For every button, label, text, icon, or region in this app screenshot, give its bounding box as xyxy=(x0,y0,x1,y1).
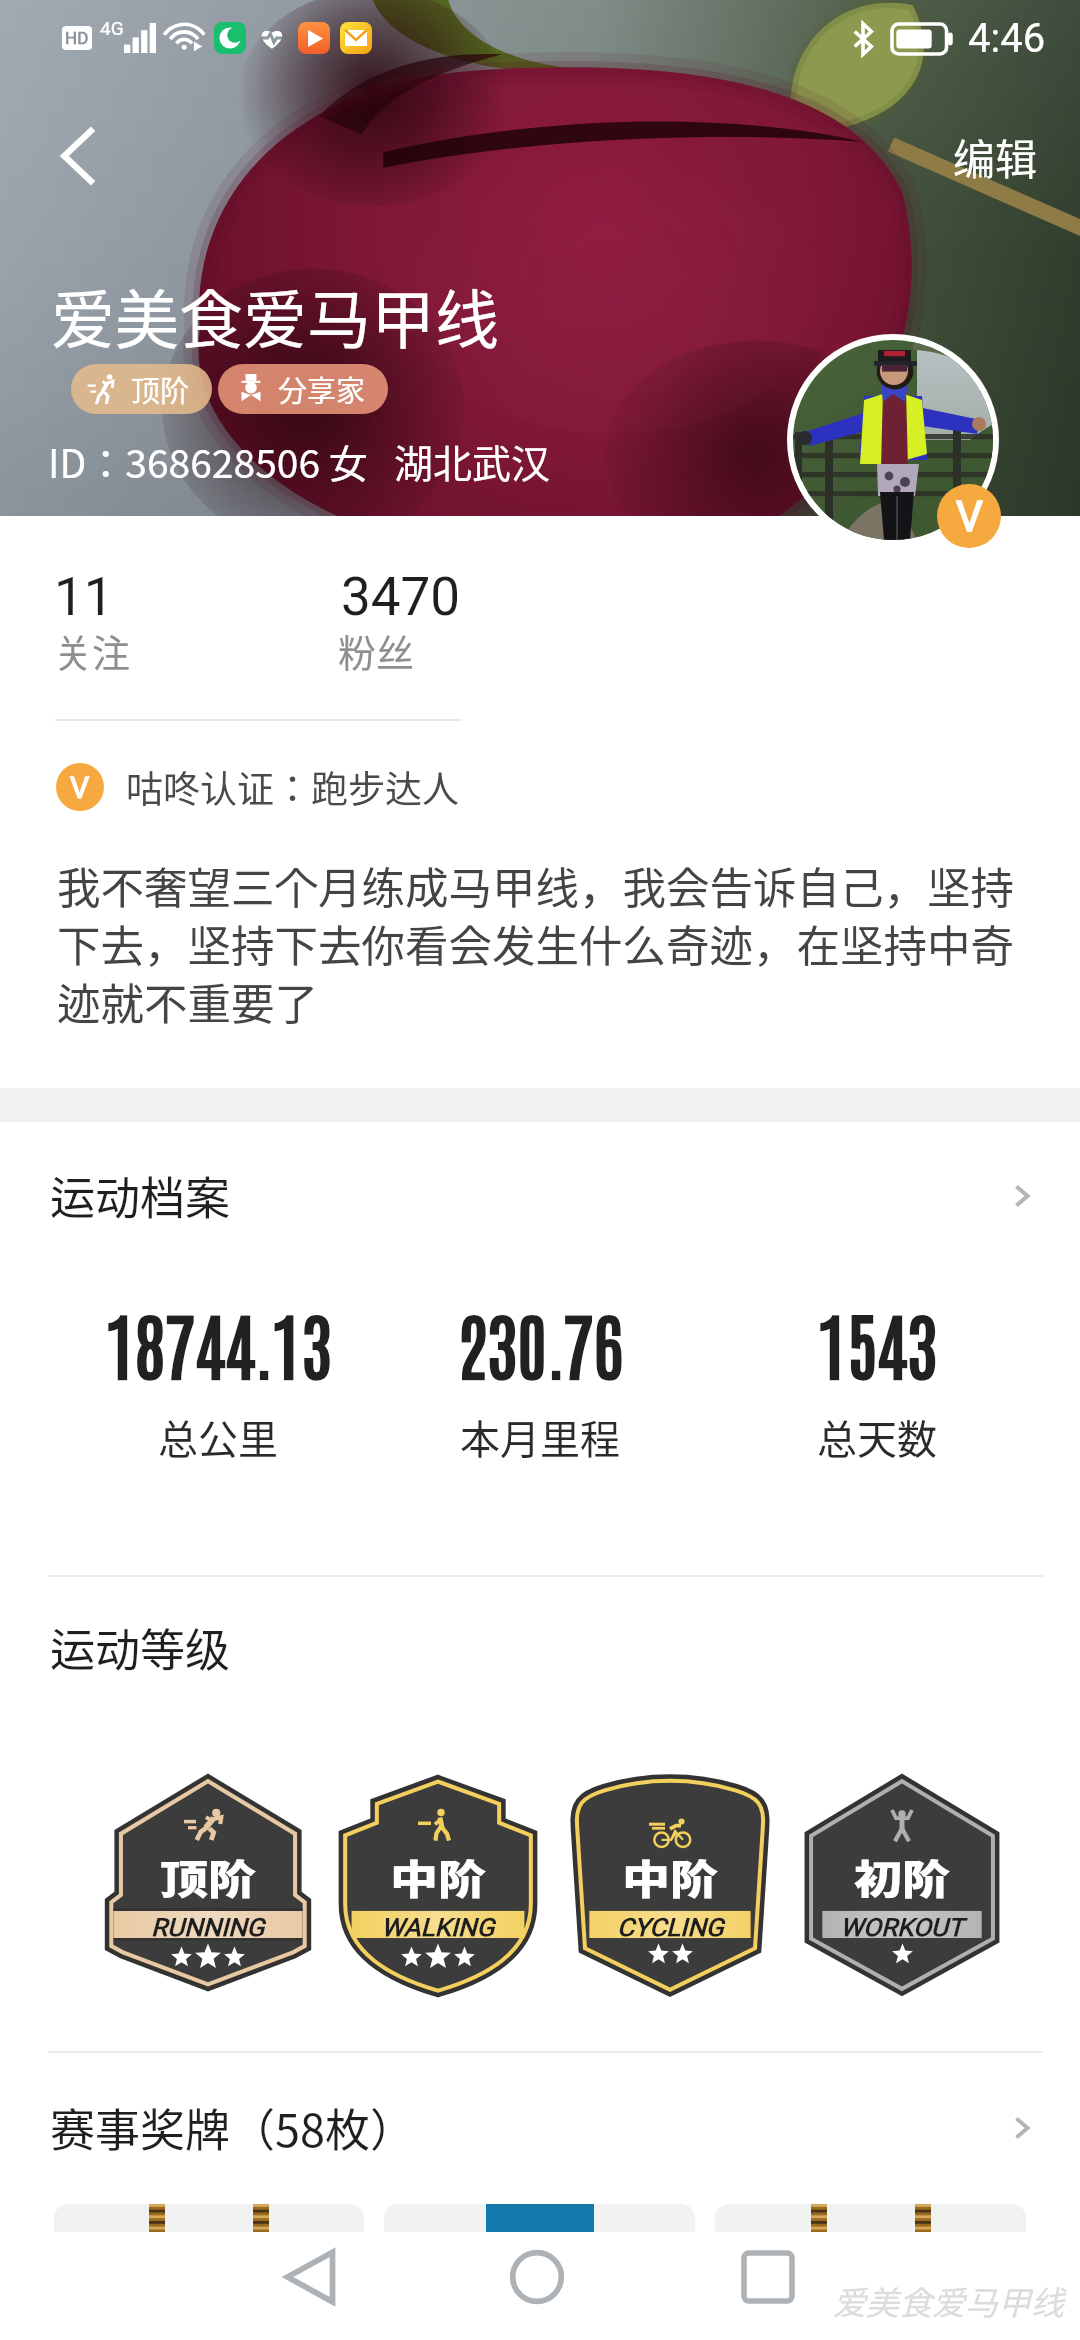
staticText: 18744.13 xyxy=(105,1296,332,1389)
staticText: 爱美食爱马甲线 xyxy=(833,2277,1064,2325)
button[interactable]: 顶阶 xyxy=(112,1778,304,1988)
staticText: 11 xyxy=(54,566,114,628)
staticText: 总天数 xyxy=(817,1408,937,1466)
button[interactable]: 11 xyxy=(54,566,114,628)
staticText: 本月里程 xyxy=(460,1408,620,1466)
staticText: WALKING xyxy=(381,1913,495,1941)
button[interactable]: 中阶 xyxy=(342,1778,534,1988)
staticText: WORKOUT xyxy=(840,1913,964,1941)
button[interactable]: Back xyxy=(256,2242,364,2312)
staticText: 中阶 xyxy=(622,1847,719,1905)
staticText: V xyxy=(956,492,983,541)
button[interactable]: 初阶 xyxy=(806,1778,998,1988)
button[interactable]: 编辑 xyxy=(911,104,1080,209)
button[interactable]: Profile photo xyxy=(793,340,993,540)
staticText: 4G xyxy=(100,17,124,39)
staticText: 粉丝 xyxy=(338,623,415,678)
staticText: 4:46 xyxy=(968,15,1046,62)
staticText: V xyxy=(70,770,90,805)
staticText: 总公里 xyxy=(158,1408,278,1466)
staticText: ID：368628506 女 湖北武汉 xyxy=(48,433,551,489)
button[interactable]: 3470 xyxy=(341,566,461,628)
button[interactable]: V xyxy=(56,760,459,814)
staticText: 我不奢望三个月练成马甲线，我会告诉自己，坚持下去，坚持下去你看会发生什么奇迹，在… xyxy=(57,854,1025,1033)
staticText: 咕咚认证：跑步达人 xyxy=(126,760,459,814)
staticText: RUNNING xyxy=(151,1913,265,1941)
button[interactable]: Back xyxy=(30,108,126,204)
button[interactable]: 运动档案 xyxy=(0,1163,1080,1228)
staticText: 初阶 xyxy=(854,1847,951,1905)
staticText: 赛事奖牌（58枚） xyxy=(50,2095,415,2160)
button[interactable]: 赛事奖牌（58枚） xyxy=(0,2095,1080,2160)
staticText: 顶阶 xyxy=(160,1847,257,1905)
staticText: 运动档案 xyxy=(50,1163,231,1228)
staticText: HD xyxy=(65,28,89,48)
staticText: 运动等级 xyxy=(50,1615,231,1680)
staticText: CYCLING xyxy=(617,1913,724,1941)
staticText: 编辑 xyxy=(953,126,1038,187)
button[interactable]: 分享家 xyxy=(218,364,388,414)
button[interactable] xyxy=(715,2204,1026,2264)
button[interactable]: 中阶 xyxy=(574,1778,766,1988)
button[interactable]: Recent apps xyxy=(714,2242,822,2312)
staticText: 230.76 xyxy=(457,1296,624,1389)
staticText: 3470 xyxy=(341,566,461,628)
staticText: 顶阶 xyxy=(131,368,190,410)
staticText: 1543 xyxy=(817,1296,938,1389)
button[interactable]: Home xyxy=(483,2242,591,2312)
staticText: 分享家 xyxy=(278,368,366,410)
button[interactable]: 顶阶 xyxy=(71,364,212,414)
button[interactable] xyxy=(384,2204,695,2264)
staticText: 爱美食爱马甲线 xyxy=(51,269,499,362)
staticText: 中阶 xyxy=(390,1847,487,1905)
staticText: 关注 xyxy=(54,623,131,678)
button[interactable] xyxy=(54,2204,364,2264)
